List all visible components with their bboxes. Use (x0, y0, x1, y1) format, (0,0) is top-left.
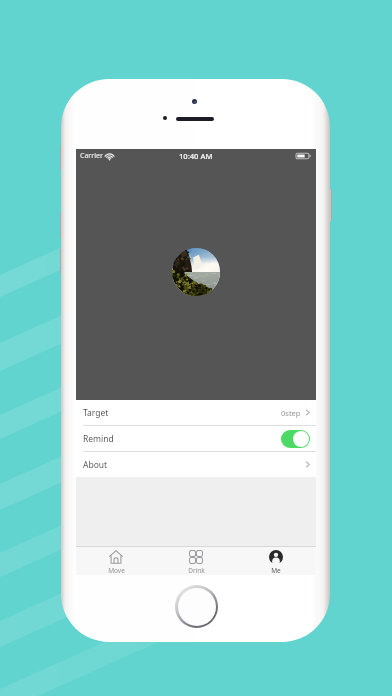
button[interactable]: Drink (156, 547, 236, 575)
button[interactable]: Remind toggle (281, 430, 310, 448)
staticText: Remind (83, 433, 114, 445)
button[interactable]: Profile photo (172, 248, 220, 296)
button[interactable]: About (76, 452, 316, 477)
staticText: 0step (281, 408, 301, 418)
staticText: Target (83, 407, 109, 419)
button[interactable]: Target (76, 400, 316, 425)
staticText: Me (271, 566, 281, 575)
button[interactable]: Remind (76, 426, 316, 451)
staticText: Carrier (80, 151, 103, 161)
staticText: About (83, 459, 108, 471)
staticText: Drink (188, 566, 205, 575)
button[interactable]: Me (236, 547, 316, 575)
staticText: 10:40 AM (179, 151, 213, 161)
staticText: Move (108, 566, 125, 575)
button[interactable]: Move (76, 547, 156, 575)
